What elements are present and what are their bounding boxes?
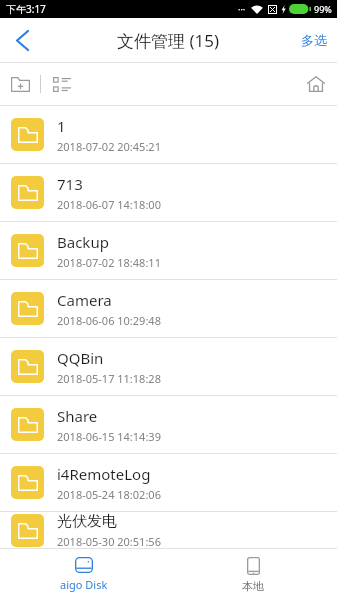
- staticText: 2018-05-17 11:18:28: [57, 371, 161, 386]
- button[interactable]: Camera: [0, 280, 337, 337]
- button[interactable]: i4RemoteLog: [0, 454, 337, 511]
- staticText: 2018-05-24 18:02:06: [57, 487, 161, 502]
- staticText: 光伏发电: [57, 512, 117, 531]
- button[interactable]: 1: [0, 106, 337, 163]
- staticText: 2018-05-30 20:51:56: [57, 534, 161, 548]
- staticText: 2018-06-06 10:29:48: [57, 313, 161, 328]
- staticText: 本地: [242, 579, 264, 593]
- button[interactable]: View mode: [41, 63, 83, 105]
- staticText: QQBin: [57, 348, 104, 368]
- staticText: 文件管理 (15): [117, 29, 220, 52]
- button[interactable]: Share: [0, 396, 337, 453]
- staticText: 99%: [314, 3, 332, 15]
- staticText: 2018-07-02 20:45:21: [57, 139, 161, 154]
- staticText: 713: [57, 174, 83, 194]
- button[interactable]: 多选: [291, 18, 337, 62]
- button[interactable]: 713: [0, 164, 337, 221]
- staticText: 2018-07-02 18:48:11: [57, 255, 161, 270]
- button[interactable]: 光伏发电: [0, 512, 337, 548]
- button[interactable]: aigo Disk: [0, 549, 168, 600]
- button[interactable]: New folder: [0, 63, 40, 105]
- staticText: Backup: [57, 232, 109, 252]
- staticText: aigo Disk: [60, 577, 108, 592]
- staticText: 2018-06-07 14:18:00: [57, 197, 161, 212]
- staticText: Camera: [57, 290, 112, 310]
- button[interactable]: Home: [295, 63, 337, 105]
- staticText: 2018-06-15 14:14:39: [57, 429, 161, 444]
- button[interactable]: Back: [0, 18, 44, 62]
- staticText: 1: [57, 116, 66, 136]
- staticText: i4RemoteLog: [57, 464, 151, 484]
- staticText: ···: [238, 3, 246, 15]
- button[interactable]: QQBin: [0, 338, 337, 395]
- button[interactable]: 本地: [168, 549, 337, 600]
- staticText: Share: [57, 406, 98, 426]
- staticText: 下午3:17: [6, 2, 46, 16]
- staticText: 多选: [301, 32, 327, 48]
- button[interactable]: Backup: [0, 222, 337, 279]
